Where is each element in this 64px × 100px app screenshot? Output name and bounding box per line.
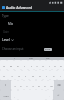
button[interactable]: SAVE xyxy=(44,48,52,51)
button[interactable]: ⇧ xyxy=(0,80,11,90)
button[interactable]: s xyxy=(8,70,15,80)
staticText: ⇧ xyxy=(4,84,7,87)
button[interactable]: u xyxy=(40,60,46,70)
button[interactable]: q xyxy=(0,60,7,70)
staticText: u xyxy=(42,64,44,67)
staticText: I'm xyxy=(46,57,50,60)
staticText: d xyxy=(18,74,20,77)
staticText: b xyxy=(38,84,40,87)
staticText: n xyxy=(44,84,46,87)
staticText: q xyxy=(3,64,5,67)
button[interactable]: o xyxy=(52,60,58,70)
button[interactable]: c xyxy=(24,80,30,90)
button[interactable]: ?123 xyxy=(0,90,11,100)
button[interactable]: w xyxy=(7,60,14,70)
button[interactable]: x xyxy=(18,80,24,90)
button[interactable]: i xyxy=(46,60,52,70)
staticText: Mix xyxy=(8,22,14,26)
staticText: x xyxy=(20,84,22,87)
button[interactable]: a xyxy=(0,70,8,80)
button[interactable]: v xyxy=(30,80,36,90)
staticText: The xyxy=(29,57,33,60)
staticText: a xyxy=(3,74,5,77)
staticText: o xyxy=(54,64,56,67)
staticText: s xyxy=(11,74,13,77)
button[interactable]: g xyxy=(29,70,36,80)
staticText: h xyxy=(39,74,41,77)
staticText: w xyxy=(10,64,12,67)
button[interactable]: ⌫ xyxy=(54,80,64,90)
staticText: e xyxy=(17,64,19,67)
staticText: . xyxy=(49,94,50,97)
button[interactable]: p xyxy=(58,60,64,70)
button[interactable]: m xyxy=(48,80,54,90)
staticText: y xyxy=(36,64,38,67)
staticText: Audio Advanced xyxy=(6,5,33,10)
staticText: t xyxy=(31,64,32,67)
button[interactable]: t xyxy=(28,60,34,70)
staticText: Choose an input xyxy=(2,47,24,51)
staticText: m xyxy=(50,84,53,87)
staticText: j xyxy=(46,74,47,77)
staticText: Level xyxy=(2,38,10,42)
staticText: Gain xyxy=(3,30,10,34)
button[interactable]: j xyxy=(43,70,50,80)
button[interactable]: Level xyxy=(2,38,14,42)
staticText: k xyxy=(53,74,55,77)
staticText: l xyxy=(60,74,61,77)
button[interactable]: n xyxy=(42,80,48,90)
staticText: z xyxy=(14,84,16,87)
staticText: r xyxy=(24,64,25,67)
staticText: ⌫ xyxy=(57,84,61,87)
staticText: v xyxy=(32,84,34,87)
staticText: g xyxy=(32,74,34,77)
staticText: i xyxy=(49,64,50,67)
staticText: ↵ xyxy=(57,94,60,97)
staticText: SAVE xyxy=(45,48,51,51)
staticText: c xyxy=(26,84,28,87)
button[interactable]: r xyxy=(21,60,28,70)
button[interactable]: d xyxy=(15,70,22,80)
staticText: p xyxy=(60,64,62,67)
button[interactable]: b xyxy=(36,80,42,90)
staticText: Type xyxy=(2,14,9,18)
button[interactable]: l xyxy=(57,70,64,80)
button[interactable]: App icon xyxy=(2,6,5,9)
staticText: f xyxy=(25,74,26,77)
staticText: ?123 xyxy=(3,94,9,97)
button[interactable]: h xyxy=(36,70,43,80)
staticText: I xyxy=(14,57,15,60)
button[interactable]: ↵ xyxy=(53,90,64,100)
button[interactable]: y xyxy=(34,60,40,70)
button[interactable]: e xyxy=(14,60,21,70)
button[interactable]: f xyxy=(22,70,29,80)
button[interactable]: z xyxy=(11,80,18,90)
button[interactable]: k xyxy=(50,70,57,80)
